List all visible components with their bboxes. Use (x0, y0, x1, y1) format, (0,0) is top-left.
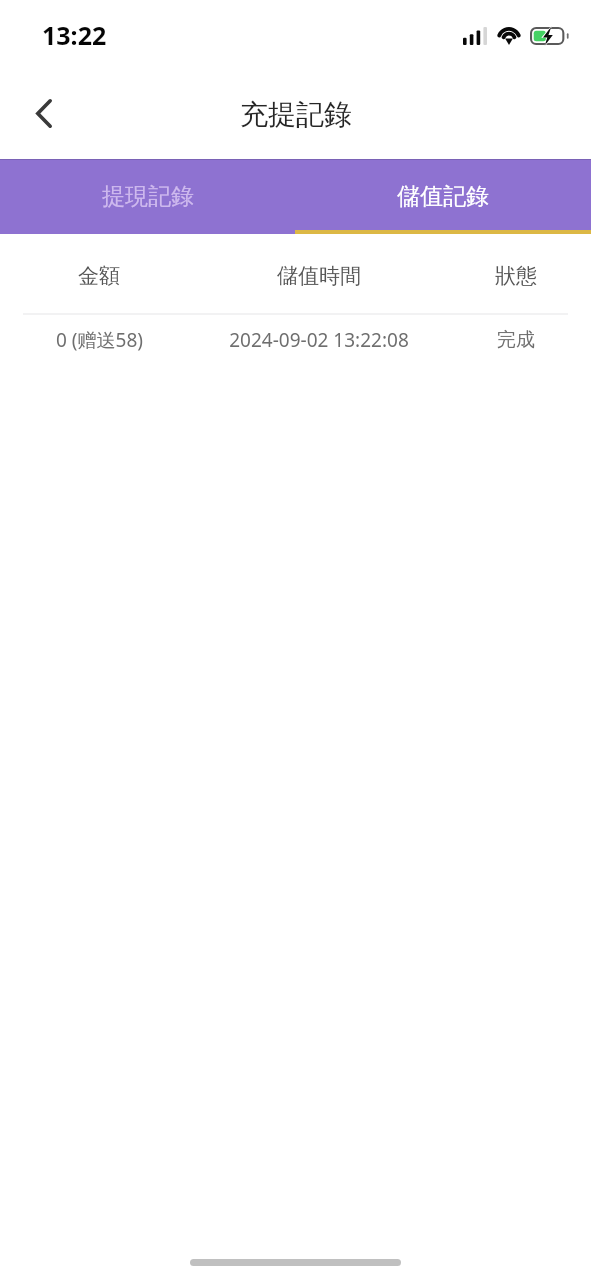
staticText: 儲值記錄 (397, 182, 489, 211)
staticText: 充提記錄 (240, 97, 352, 132)
staticText: 0 (赠送58) (56, 327, 143, 353)
staticText: 13:22 (42, 18, 107, 52)
button[interactable]: 儲值記錄 (295, 159, 591, 234)
staticText: 提現記錄 (102, 182, 194, 211)
staticText: 2024-09-02 13:22:08 (229, 327, 409, 353)
button[interactable]: 提現記錄 (0, 159, 295, 234)
staticText: 完成 (497, 328, 535, 352)
button[interactable]: Back (18, 87, 70, 139)
staticText: 狀態 (495, 263, 537, 289)
button[interactable]: 0 (赠送58) (0, 315, 591, 369)
staticText: 儲值時間 (277, 263, 361, 289)
staticText: 金額 (78, 263, 120, 289)
